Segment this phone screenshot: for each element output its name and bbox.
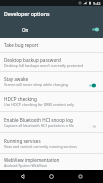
button[interactable]: Desktop backup password [0,53,103,71]
button[interactable]: Enable Bluetooth HCI snoop log [0,112,103,132]
button[interactable] [92,26,99,33]
button[interactable]: Recent apps [74,170,87,183]
button[interactable]: Back [16,170,29,183]
staticText: On [22,27,92,33]
staticText: Running services [4,138,41,144]
staticText: Screen will never sleep while charging [4,82,68,87]
staticText: WebView implementation [4,157,60,163]
button[interactable]: Running services [0,133,103,153]
button[interactable]: Home [45,170,58,183]
button[interactable]: WebView implementation [0,154,103,170]
button[interactable]: Stay awake [0,72,103,91]
staticText: Developer options [4,10,50,17]
button[interactable]: Take bug report [0,38,103,52]
staticText: Stay awake [4,76,29,82]
staticText: View and control currently running servi… [4,144,78,149]
staticText: Android System WebView [4,163,47,168]
staticText: Take bug report [4,42,39,48]
staticText: Capture all bluetooth HCI packets in a f… [4,123,74,128]
button[interactable]: HDCP checking [0,92,103,111]
staticText: 9:43 [93,1,101,6]
staticText: HDCP checking [4,96,37,102]
button[interactable]: On [0,21,103,38]
staticText: Desktop full backups aren't currently pr… [4,63,84,68]
staticText: Desktop backup password [4,57,61,63]
staticText: Enable Bluetooth HCI snoop log [4,117,73,123]
button[interactable] [89,123,96,130]
staticText: Use HDCP checking for DRM content only [4,102,74,107]
button[interactable] [89,82,96,89]
